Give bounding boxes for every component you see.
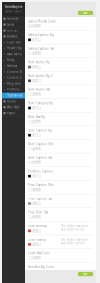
staticText: Portfolio (7, 88, 20, 91)
staticText: #ffffff (32, 188, 40, 192)
staticText: #ffffff (32, 256, 40, 260)
staticText: Slide Caption Title (28, 142, 54, 146)
staticText: Slide Audio Bg 2 (28, 74, 53, 78)
staticText: Slide Audio Bg (28, 60, 50, 64)
staticText: Price Caption Title (28, 183, 54, 187)
staticText: admin panel (5, 10, 22, 13)
button[interactable]: Woo Style (2, 104, 25, 110)
staticText: GoodLayers (5, 5, 22, 8)
staticText: Pages (7, 111, 15, 115)
staticText: Sidebar (7, 64, 17, 68)
staticText: Slide Caption Bg (28, 129, 52, 132)
staticText: #111111 (32, 133, 41, 137)
staticText: Testimonial (7, 94, 22, 97)
staticText: #ffffff (32, 93, 40, 96)
button[interactable]: Testimonial (2, 93, 25, 99)
staticText: Body (7, 58, 14, 62)
staticText: Price Item Bg (28, 224, 47, 228)
staticText: Slide Caption Text (28, 156, 52, 159)
staticText: Content 2 (7, 76, 22, 79)
staticText: General (7, 17, 18, 20)
staticText: #ffffff (32, 24, 40, 28)
staticText: #ffffff (32, 120, 40, 123)
staticText: #ffffff (32, 147, 40, 151)
staticText: #111111 (32, 106, 41, 110)
button[interactable]: Social (2, 22, 25, 28)
staticText: #111111 (32, 38, 41, 41)
staticText: Header Bg (7, 46, 22, 50)
button[interactable]: Cover Site (2, 40, 25, 45)
button[interactable]: Font Set (2, 28, 25, 34)
staticText: The slider nav color and slider center (61, 238, 88, 245)
staticText: Font Set (7, 29, 18, 32)
button[interactable]: Save (78, 11, 93, 15)
staticText: Slide Category Bg (28, 101, 53, 105)
staticText: Gallery Caption Text (28, 47, 54, 50)
staticText: Cover Site (7, 41, 21, 44)
button[interactable]: Portfolio (2, 87, 25, 93)
staticText: Social (7, 23, 14, 26)
staticText: Price Caption Text (28, 197, 52, 200)
staticText: Item Box Bg Color (28, 265, 54, 269)
staticText: Content El (7, 70, 22, 74)
button[interactable]: Body (2, 57, 25, 63)
staticText: #8c8c8c (32, 202, 41, 205)
button[interactable]: Blog Grid (2, 81, 25, 87)
button[interactable]: Pages (2, 110, 25, 116)
staticText: #474747 (32, 79, 41, 82)
staticText: Slide Nav Bg (28, 115, 45, 119)
button[interactable]: Save (78, 272, 93, 276)
staticText: Price Slide Text (28, 211, 48, 214)
staticText: Woo Style (7, 105, 20, 109)
staticText: Footer (7, 100, 16, 103)
button[interactable]: General (2, 16, 25, 22)
button[interactable]: Content 2 (2, 75, 25, 81)
staticText: #e8402a (32, 243, 41, 246)
staticText: Main Menu (7, 52, 22, 56)
staticText: #ffffff (32, 52, 40, 55)
button[interactable]: Footer (2, 99, 25, 104)
button[interactable]: Content El (2, 69, 25, 75)
staticText: Cover Nav Bg (28, 238, 46, 241)
staticText: Blog Grid (7, 82, 21, 85)
button[interactable]: Advance (2, 34, 25, 40)
staticText: #ffffff (32, 215, 40, 219)
staticText: Save (83, 272, 88, 276)
staticText: Gallery Thumb Cover (28, 20, 56, 23)
staticText: The slider nav color and slider center (61, 224, 88, 231)
button[interactable]: Main Menu (2, 51, 25, 57)
staticText: #111111 (32, 174, 41, 178)
staticText: Gallery Caption Bg (28, 33, 54, 37)
staticText: Cover Nav Color (28, 251, 50, 255)
button[interactable]: Header Bg (2, 45, 25, 51)
button[interactable]: Sidebar (2, 63, 25, 69)
staticText: Save (83, 11, 88, 15)
staticText: Advance (7, 35, 18, 38)
staticText: #6e6e6e (32, 65, 41, 69)
staticText: #ffffff (32, 161, 40, 164)
staticText: Slide Audio Text (28, 88, 50, 91)
staticText: Portfolio Caption (28, 170, 53, 173)
staticText: #e8402a (32, 229, 41, 232)
